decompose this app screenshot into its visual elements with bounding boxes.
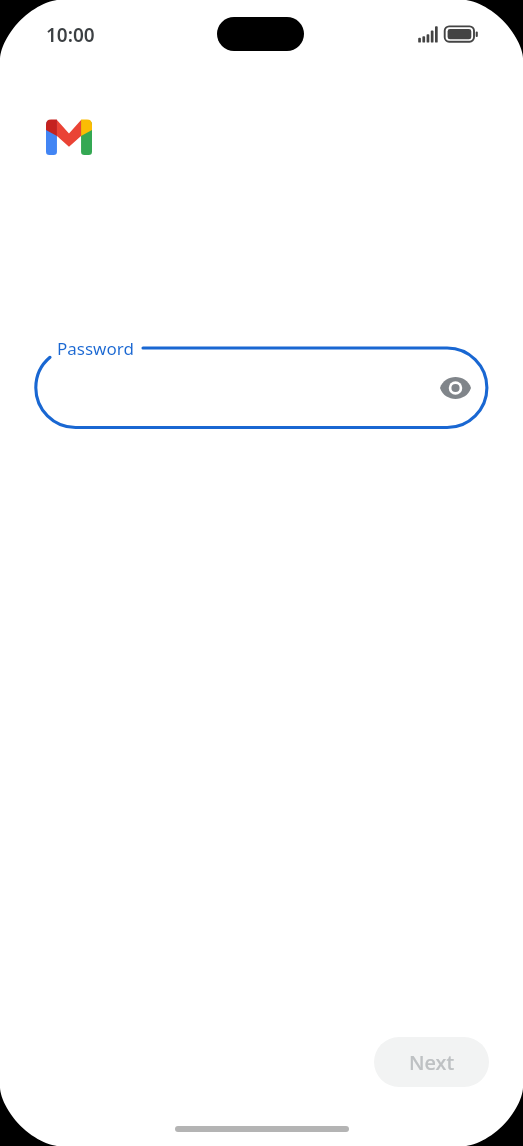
button[interactable]: Next xyxy=(374,1037,489,1087)
button[interactable]: Show password xyxy=(433,366,477,410)
button[interactable]: Password xyxy=(24,330,499,440)
staticText: 10:00 xyxy=(46,22,95,48)
staticText: Password xyxy=(57,337,134,360)
staticText: Next xyxy=(409,1049,455,1076)
